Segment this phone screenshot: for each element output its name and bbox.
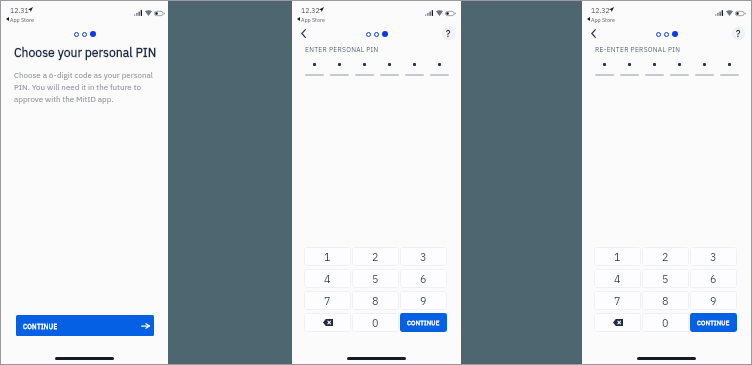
- staticText: Choose a 6-digit code as your personal P…: [14, 70, 156, 104]
- staticText: ?: [446, 28, 451, 40]
- staticText: 1: [614, 250, 621, 264]
- button[interactable]: Help: [442, 27, 455, 40]
- staticText: ?: [736, 28, 741, 40]
- staticText: 9: [420, 294, 427, 308]
- staticText: ENTER PERSONAL PIN: [305, 45, 379, 54]
- staticText: 3: [710, 250, 717, 264]
- staticText: 3: [420, 250, 427, 264]
- staticText: 8: [372, 294, 379, 308]
- button[interactable]: 2: [352, 247, 399, 266]
- button[interactable]: 1: [594, 247, 641, 266]
- staticText: 12.32: [301, 6, 320, 15]
- staticText: 4: [614, 272, 621, 286]
- staticText: RE-ENTER PERSONAL PIN: [595, 45, 681, 54]
- button[interactable]: 3: [690, 247, 737, 266]
- staticText: 7: [614, 294, 621, 308]
- staticText: App Store: [591, 16, 615, 23]
- button[interactable]: 7: [304, 291, 351, 310]
- button[interactable]: Help: [732, 27, 745, 40]
- button[interactable]: 8: [642, 291, 689, 310]
- button[interactable]: 1: [304, 247, 351, 266]
- staticText: CONTINUE: [23, 322, 58, 330]
- staticText: 5: [372, 272, 379, 286]
- staticText: 6: [420, 272, 427, 286]
- button[interactable]: 6: [400, 269, 447, 288]
- button[interactable]: 0: [642, 313, 689, 332]
- button[interactable]: 5: [642, 269, 689, 288]
- staticText: 0: [662, 316, 669, 330]
- button[interactable]: 7: [594, 291, 641, 310]
- staticText: 12.31: [10, 6, 29, 15]
- staticText: 2: [662, 250, 669, 264]
- staticText: CONTINUE: [697, 319, 730, 327]
- staticText: 7: [324, 294, 331, 308]
- staticText: 2: [372, 250, 379, 264]
- button[interactable]: 8: [352, 291, 399, 310]
- staticText: 6: [710, 272, 717, 286]
- button[interactable]: CONTINUE: [400, 313, 447, 332]
- staticText: App Store: [301, 16, 325, 23]
- button[interactable]: 0: [352, 313, 399, 332]
- staticText: CONTINUE: [407, 319, 440, 327]
- button[interactable]: Backspace: [594, 313, 641, 332]
- button[interactable]: CONTINUE: [690, 313, 737, 332]
- staticText: 12.32: [591, 6, 610, 15]
- button[interactable]: Back: [295, 25, 312, 42]
- staticText: 5: [662, 272, 669, 286]
- button[interactable]: 4: [594, 269, 641, 288]
- staticText: 1: [324, 250, 331, 264]
- button[interactable]: 9: [690, 291, 737, 310]
- button[interactable]: Back: [585, 25, 602, 42]
- button[interactable]: 9: [400, 291, 447, 310]
- button[interactable]: CONTINUE: [16, 315, 154, 336]
- button[interactable]: 4: [304, 269, 351, 288]
- staticText: 8: [662, 294, 669, 308]
- button[interactable]: Backspace: [304, 313, 351, 332]
- button[interactable]: 3: [400, 247, 447, 266]
- button[interactable]: 2: [642, 247, 689, 266]
- staticText: Choose your personal PIN: [14, 44, 157, 60]
- staticText: 4: [324, 272, 331, 286]
- button[interactable]: 6: [690, 269, 737, 288]
- staticText: App Store: [10, 16, 34, 23]
- staticText: 9: [710, 294, 717, 308]
- button[interactable]: 5: [352, 269, 399, 288]
- staticText: 0: [372, 316, 379, 330]
